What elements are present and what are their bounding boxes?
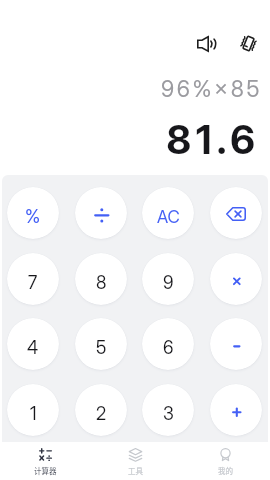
- staticText: 9: [163, 272, 174, 294]
- button[interactable]: %: [7, 187, 59, 239]
- button[interactable]: [210, 253, 262, 305]
- staticText: AC: [157, 207, 180, 228]
- button[interactable]: 5: [75, 318, 127, 370]
- staticText: 我的: [218, 465, 233, 476]
- staticText: 6: [163, 337, 174, 359]
- button[interactable]: 9: [142, 253, 194, 305]
- button[interactable]: [75, 187, 127, 239]
- staticText: 8: [96, 272, 107, 294]
- button[interactable]: 6: [142, 318, 194, 370]
- button[interactable]: 4: [7, 318, 59, 370]
- staticText: 81.6: [0, 115, 260, 163]
- staticText: 1: [30, 403, 37, 425]
- button[interactable]: [210, 318, 262, 370]
- button[interactable]: 2: [75, 384, 127, 436]
- button[interactable]: [210, 187, 262, 239]
- staticText: %: [25, 206, 41, 228]
- button[interactable]: Vibrate: [234, 29, 262, 57]
- staticText: 96%×85: [0, 75, 262, 102]
- staticText: 3: [163, 403, 174, 425]
- button[interactable]: 3: [142, 384, 194, 436]
- button[interactable]: 1: [7, 384, 59, 436]
- button[interactable]: 工具: [90, 443, 180, 480]
- button[interactable]: 8: [75, 253, 127, 305]
- button[interactable]: Sound: [193, 30, 221, 58]
- button[interactable]: 7: [7, 253, 59, 305]
- staticText: 计算器: [34, 465, 57, 476]
- staticText: 5: [96, 337, 107, 359]
- staticText: 2: [96, 403, 107, 425]
- staticText: 4: [27, 337, 39, 359]
- button[interactable]: 计算器: [0, 443, 90, 480]
- button[interactable]: AC: [142, 187, 194, 239]
- button[interactable]: [210, 384, 262, 436]
- staticText: 7: [28, 272, 38, 294]
- staticText: 工具: [128, 465, 143, 476]
- button[interactable]: 我的: [180, 443, 270, 480]
